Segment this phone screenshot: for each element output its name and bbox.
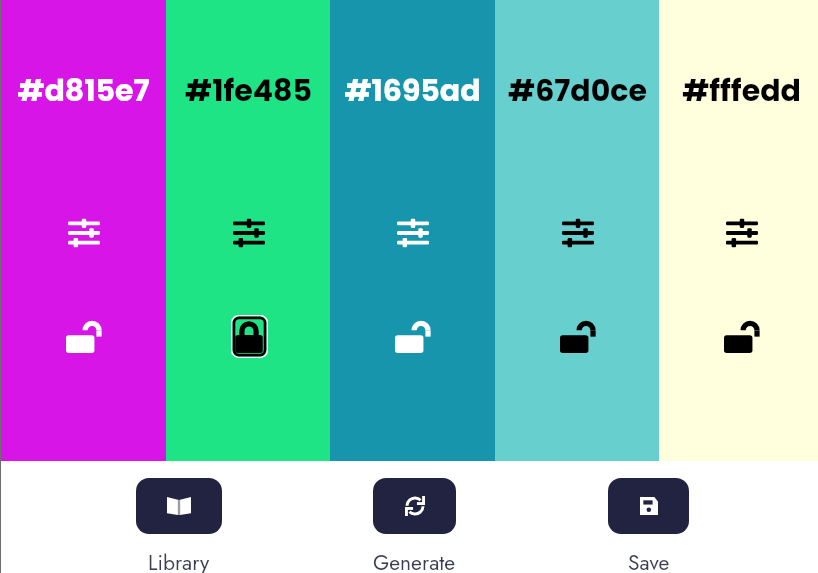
button[interactable]: Unlock colour #1fe485	[225, 312, 273, 360]
button[interactable]: Lock colour #1695ad	[389, 312, 437, 360]
button[interactable]: Lock colour #fffedd	[718, 312, 766, 360]
button[interactable]: Adjust colour #1fe485	[225, 209, 273, 257]
staticText: #1fe485	[166, 70, 331, 112]
staticText: Save	[628, 548, 670, 573]
button[interactable]: Generate	[373, 478, 456, 534]
button[interactable]: Lock colour #d815e7	[60, 312, 108, 360]
staticText: Library	[148, 548, 210, 573]
staticText: #d815e7	[1, 70, 166, 112]
button[interactable]: Library	[136, 478, 222, 534]
button[interactable]: Adjust colour #67d0ce	[554, 209, 602, 257]
button[interactable]: Adjust colour #fffedd	[718, 209, 766, 257]
staticText: #1695ad	[330, 70, 495, 112]
staticText: #67d0ce	[495, 70, 660, 112]
button[interactable]: Lock colour #67d0ce	[554, 312, 602, 360]
button[interactable]: Adjust colour #d815e7	[60, 209, 108, 257]
button[interactable]: Adjust colour #1695ad	[389, 209, 437, 257]
staticText: #fffedd	[659, 70, 818, 112]
staticText: Generate	[373, 548, 456, 573]
button[interactable]: Save	[608, 478, 689, 534]
